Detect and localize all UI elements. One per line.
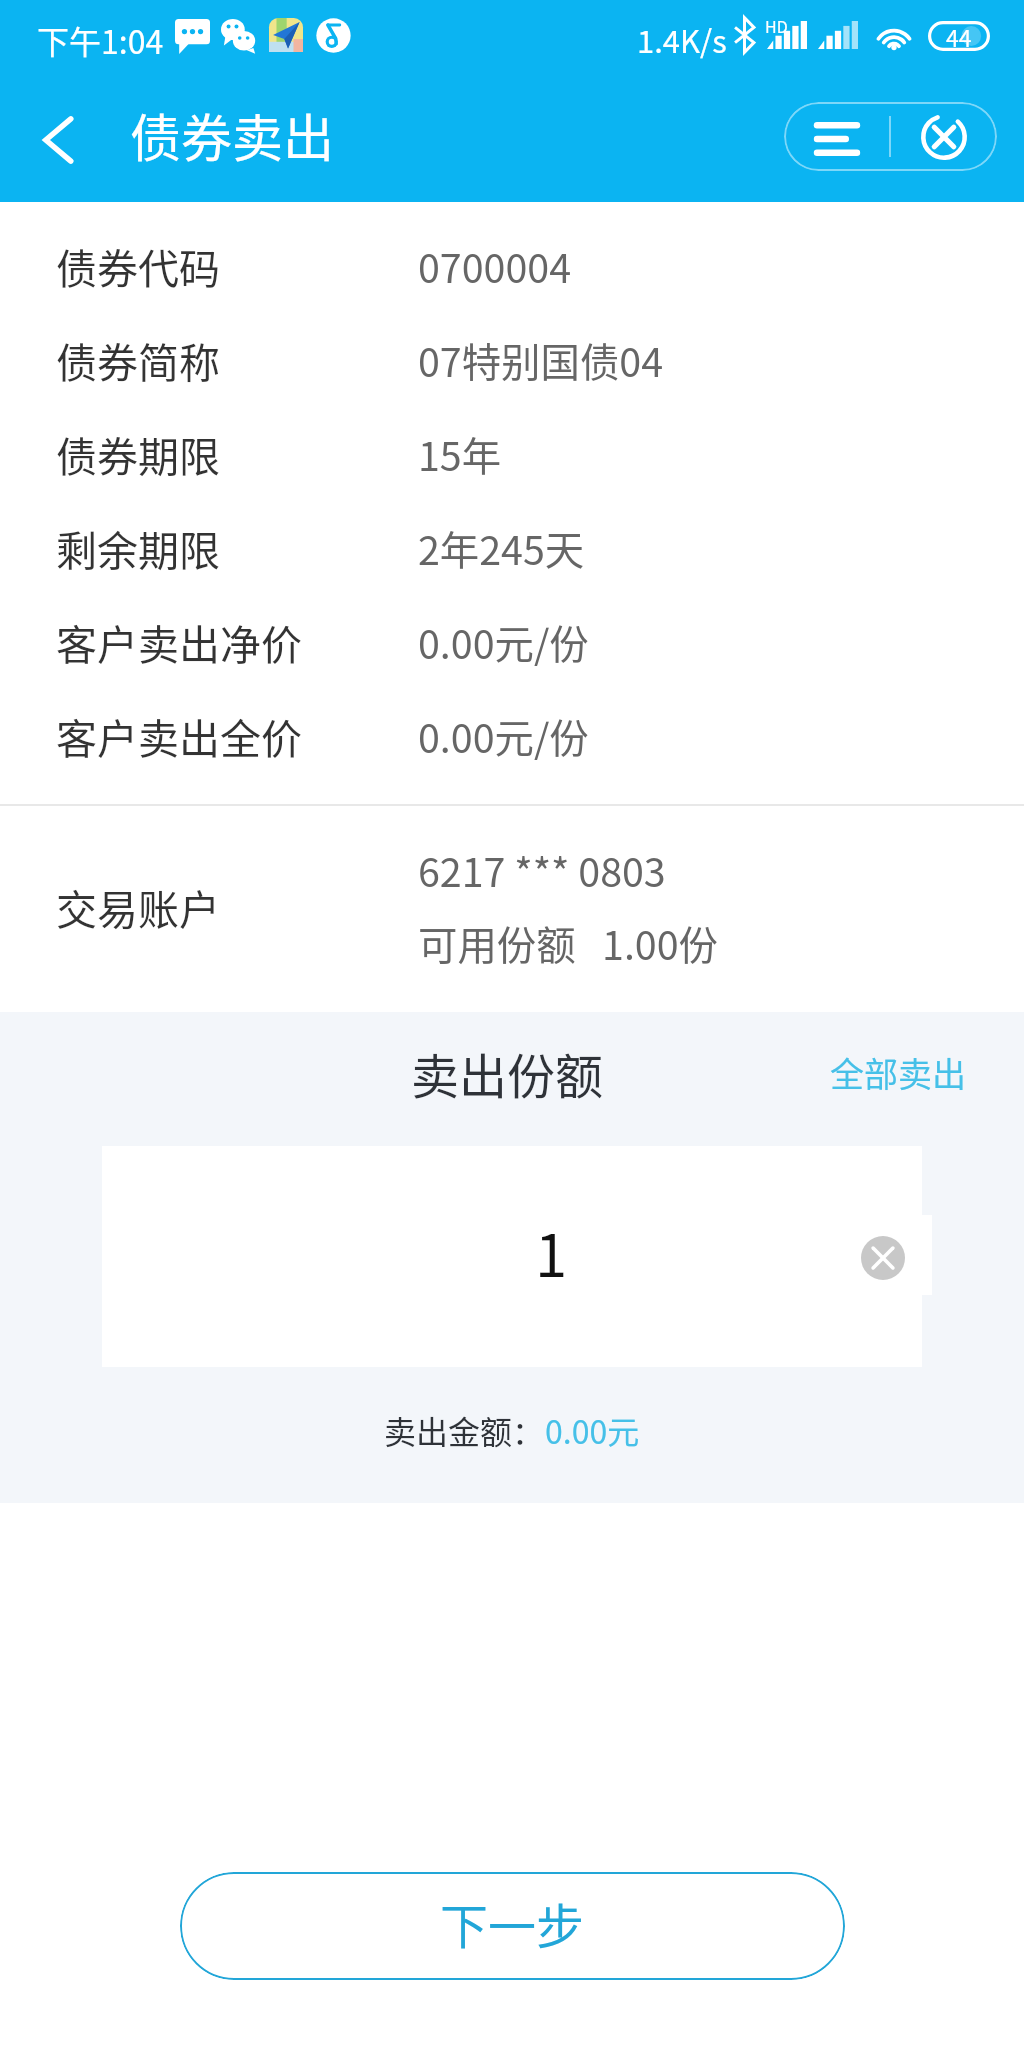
button[interactable]: 债券代码 [0,218,1024,312]
staticText: 15年 [418,425,502,482]
staticText: 0.00元/份 [418,613,589,670]
button[interactable]: Clear [839,1214,927,1302]
button[interactable]: 下一步 [180,1872,845,1980]
staticText: 全部卖出 [830,1048,966,1097]
staticText: 0700004 [418,237,572,294]
button[interactable]: 交易账户 [0,803,1024,1009]
staticText: 可用份额 1.00份 [418,914,718,971]
staticText: 下一步 [440,1888,585,1958]
button[interactable]: 债券期限 [0,406,1024,500]
button[interactable]: 客户卖出全价 [0,688,1024,782]
staticText: 卖出金额： [384,1407,545,1453]
staticText: 债券简称 [56,330,418,389]
button[interactable]: Menu [784,102,890,171]
staticText: 2年245天 [418,519,585,576]
staticText: 1 [535,1210,568,1294]
button[interactable]: 债券简称 [0,312,1024,406]
staticText: 44 [946,20,972,50]
staticText: 债券卖出 [130,98,335,172]
button[interactable]: 全部卖出 [806,1024,990,1121]
button[interactable]: 剩余期限 [0,500,1024,594]
staticText: 客户卖出净价 [56,612,418,671]
button[interactable]: Back [18,78,98,202]
staticText: 1.4K/s [637,17,727,62]
staticText: 07特别国债04 [418,331,664,388]
staticText: 剩余期限 [56,518,418,577]
staticText: 交易账户 [56,877,418,936]
button[interactable]: Close [890,102,997,171]
staticText: 客户卖出全价 [56,706,418,765]
staticText: 0.00元 [545,1407,640,1453]
staticText: 债券期限 [56,424,418,483]
staticText: HD [765,14,788,37]
staticText: 下午1:04 [37,17,164,63]
staticText: 6217 *** 0803 [418,841,666,898]
staticText: 债券代码 [56,236,418,295]
button[interactable]: 客户卖出净价 [0,594,1024,688]
staticText: 0.00元/份 [418,707,589,764]
staticText: 卖出份额 [411,1038,604,1108]
